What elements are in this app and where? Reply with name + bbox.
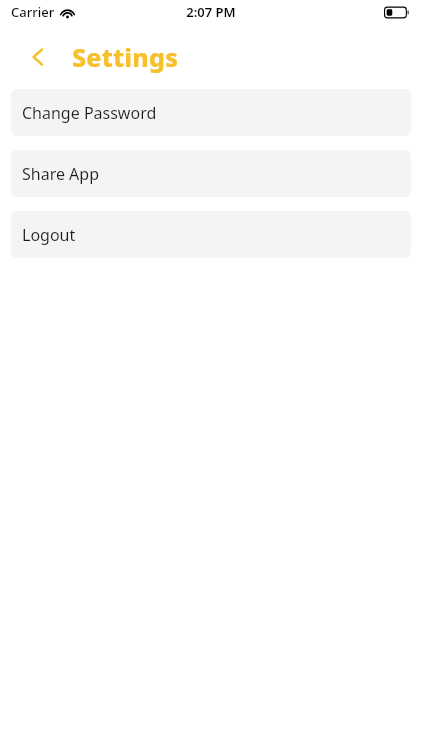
button[interactable]: Logout	[11, 211, 411, 258]
staticText: Change Password	[22, 102, 157, 124]
staticText: Carrier	[11, 3, 55, 21]
staticText: Share App	[22, 163, 100, 185]
staticText: 2:07 PM	[186, 3, 236, 21]
staticText: Settings	[72, 40, 179, 74]
staticText: Logout	[22, 224, 76, 246]
button[interactable]: Change Password	[11, 89, 411, 136]
button[interactable]: Back	[18, 37, 58, 77]
button[interactable]: Share App	[11, 150, 411, 197]
